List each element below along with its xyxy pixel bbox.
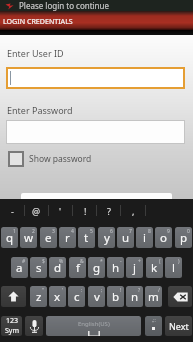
button[interactable]: Shift [1,286,26,307]
staticText: x [54,289,61,305]
staticText: s [36,260,42,276]
staticText: ? [107,205,111,217]
button[interactable]: z [30,286,47,307]
button[interactable]: a [11,257,28,278]
button[interactable]: e [40,227,57,248]
staticText: 1 [13,228,16,235]
staticText: Please login to continue [19,0,110,11]
staticText: 6 [110,228,113,235]
button[interactable]: ? [97,200,121,221]
staticText: ' [59,205,62,217]
staticText: ! [120,287,122,294]
staticText: m [148,289,159,305]
staticText: n [131,289,139,305]
staticText: r [65,230,70,246]
staticText: @ [32,205,41,217]
button[interactable] [6,67,185,89]
button[interactable]: Next [165,316,192,336]
button[interactable]: d [49,257,66,278]
staticText: LOGIN CREDENTIALS [3,16,73,26]
staticText: $ [42,258,45,265]
button[interactable]: f [69,257,86,278]
button[interactable]: u [117,227,134,248]
button[interactable]: s [30,257,47,278]
button[interactable]: m [145,286,162,307]
staticText: 2 [32,228,35,235]
staticText: d [54,260,62,276]
button[interactable]: @ [24,200,48,221]
button[interactable]: l [165,257,182,278]
button[interactable]: ' [48,200,72,221]
staticText: + [138,258,141,265]
staticText: o [160,230,167,246]
staticText: l [172,260,175,276]
button[interactable]: w [20,227,37,248]
button[interactable]: v [88,286,105,307]
staticText: v [94,289,100,305]
staticText: c [74,289,80,305]
button[interactable]: ! [73,200,97,221]
staticText: % [59,258,64,265]
staticText: 5 [90,228,93,235]
staticText: ; [101,287,103,294]
staticText: t [84,230,89,246]
staticText: " [42,287,45,294]
button[interactable] [21,193,172,215]
staticText: 3 [52,228,55,235]
staticText: ) [178,258,180,265]
button[interactable]: Show password [8,151,92,167]
staticText: 7 [129,228,132,235]
button[interactable]: q [1,227,18,248]
staticText: - [11,205,14,217]
button[interactable]: g [88,257,105,278]
staticText: f [76,260,80,276]
button[interactable]: i [136,227,153,248]
staticText: Show password [29,153,92,165]
button[interactable]: k [146,257,163,278]
staticText: i [143,230,146,246]
button[interactable]: y [98,227,115,248]
button[interactable]: b [107,286,124,307]
button[interactable]: r [59,227,76,248]
button[interactable]: Space [46,316,141,336]
button[interactable]: c [68,286,85,307]
staticText: 123 [6,316,19,326]
button[interactable]: p [175,227,192,248]
staticText: ? [138,287,141,294]
staticText: - [120,258,122,265]
button[interactable]: Backspace [168,286,192,307]
button[interactable] [6,120,185,144]
staticText: u [122,230,130,246]
staticText: ,;: [152,317,156,323]
staticText: : [81,287,83,294]
button[interactable]: , [121,200,145,221]
staticText: a [16,260,23,276]
staticText: 8 [148,228,151,235]
button[interactable]: o [155,227,172,248]
staticText: # [22,258,26,265]
button[interactable]: Period [145,316,162,336]
button[interactable]: x [49,286,66,307]
staticText: w [24,230,34,246]
staticText: 4 [71,228,74,235]
button[interactable]: h [107,257,124,278]
staticText: ' [62,287,64,294]
staticText: j [133,260,136,276]
staticText: h [112,260,120,276]
staticText: ( [159,258,161,265]
staticText: z [36,289,42,305]
staticText: e [45,230,52,246]
button[interactable]: j [126,257,143,278]
staticText: g [93,260,101,276]
button[interactable]: t [78,227,95,248]
staticText: 9 [167,228,170,235]
button[interactable]: - [0,200,24,221]
button[interactable]: Voice input [25,316,43,336]
button[interactable]: 123 [1,316,22,336]
staticText: Enter Password [7,104,73,116]
button[interactable]: n [126,286,143,307]
staticText: Enter User ID [7,47,64,59]
staticText: y [104,230,110,246]
staticText: ! [84,205,87,217]
staticText: / [158,287,160,294]
